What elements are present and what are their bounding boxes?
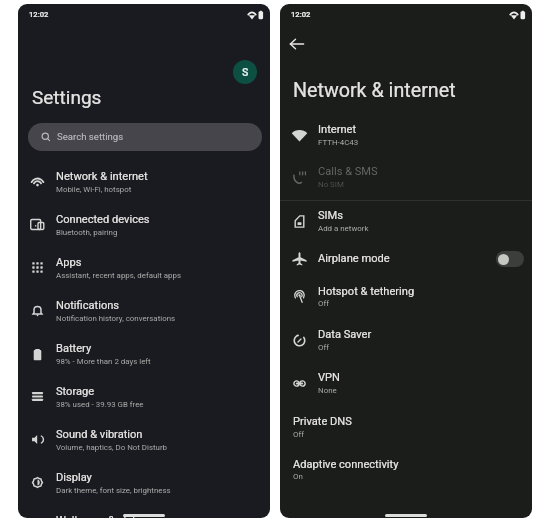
staticText: S [242, 66, 249, 78]
button[interactable]: Account [233, 60, 257, 84]
staticText: Notifications [56, 299, 120, 312]
staticText: Assistant, recent apps, default apps [56, 271, 182, 280]
button[interactable] [18, 461, 270, 504]
staticText: Adaptive connectivity [293, 458, 399, 471]
button[interactable] [280, 450, 532, 490]
button[interactable] [280, 157, 532, 197]
staticText: Connected devices [56, 213, 150, 226]
staticText: Off [318, 299, 329, 308]
staticText: 38% used - 39.93 GB free [56, 400, 144, 409]
staticText: VPN [318, 371, 340, 384]
staticText: Airplane mode [318, 252, 390, 265]
button[interactable] [280, 320, 532, 360]
staticText: 98% - More than 2 days left [56, 357, 151, 366]
button[interactable] [280, 407, 532, 447]
staticText: FTTH-4C43 [318, 138, 359, 147]
staticText: Display [56, 471, 92, 484]
staticText: None [318, 386, 337, 395]
button[interactable] [18, 418, 270, 461]
button[interactable] [18, 159, 270, 202]
staticText: Search settings [57, 131, 124, 142]
staticText: Battery [56, 342, 92, 355]
staticText: Settings [32, 86, 102, 108]
staticText: Apps [56, 256, 82, 269]
staticText: Internet [318, 123, 357, 136]
staticText: Off [318, 343, 329, 352]
button[interactable] [18, 288, 270, 331]
staticText: Sound & vibration [56, 428, 143, 441]
staticText: Network & internet [293, 79, 456, 102]
staticText: 12:02 [291, 10, 311, 19]
staticText: SIMs [318, 209, 344, 222]
staticText: Data Saver [318, 328, 372, 341]
button[interactable] [280, 239, 532, 279]
staticText: Off [293, 430, 304, 439]
button[interactable] [18, 245, 270, 288]
staticText: Add a network [318, 224, 369, 233]
button[interactable] [18, 331, 270, 374]
staticText: Dark theme, font size, brightness [56, 486, 171, 495]
staticText: Calls & SMS [318, 165, 378, 178]
staticText: Volume, haptics, Do Not Disturb [56, 443, 168, 452]
button[interactable] [280, 115, 532, 155]
staticText: No SIM [318, 180, 344, 189]
staticText: Wallpaper & style [56, 514, 141, 518]
staticText: Network & internet [56, 170, 148, 183]
button[interactable] [280, 277, 532, 317]
staticText: Notification history, conversations [56, 314, 176, 323]
button[interactable] [280, 363, 532, 403]
button[interactable]: Back [286, 33, 308, 55]
button[interactable] [18, 374, 270, 417]
button[interactable] [18, 202, 270, 245]
staticText: Mobile, Wi-Fi, hotspot [56, 185, 132, 194]
staticText: Bluetooth, pairing [56, 228, 118, 237]
button[interactable] [18, 504, 270, 518]
staticText: On [293, 472, 303, 481]
staticText: Storage [56, 385, 95, 398]
staticText: Private DNS [293, 415, 352, 428]
button[interactable] [28, 123, 262, 151]
staticText: Hotspot & tethering [318, 285, 415, 298]
button[interactable]: Airplane mode switch [496, 251, 524, 267]
button[interactable] [280, 201, 532, 241]
staticText: 12:02 [29, 10, 49, 19]
